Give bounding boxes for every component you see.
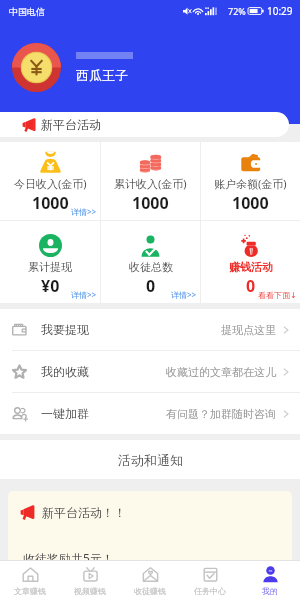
button[interactable]: 任务中心	[180, 561, 240, 600]
staticText: 累计提现	[28, 260, 72, 274]
button[interactable]: 文章赚钱	[0, 561, 60, 600]
staticText: 收藏过的文章都在这儿	[166, 365, 276, 379]
staticText: 中国电信	[9, 6, 45, 17]
staticText: 西瓜王子	[76, 67, 128, 83]
button[interactable]: 收徒赚钱	[120, 561, 180, 600]
button[interactable]: 累计提现	[0, 221, 100, 303]
button[interactable]: 我的	[240, 561, 300, 600]
staticText: 今日收入(金币)	[14, 176, 87, 191]
button[interactable]: 今日收入(金币)	[0, 142, 100, 220]
staticText: 0	[146, 275, 156, 297]
staticText: 新平台活动	[41, 117, 101, 132]
staticText: 赚钱活动	[229, 260, 273, 274]
staticText: 文章赚钱	[14, 586, 46, 596]
button[interactable]: 我的收藏	[0, 351, 300, 392]
button[interactable]: 新平台活动！！	[8, 491, 292, 586]
button[interactable]: 视频赚钱	[60, 561, 120, 600]
button[interactable]: 累计收入(金币)	[101, 142, 200, 220]
button[interactable]: 赚钱活动	[201, 221, 300, 303]
staticText: 详情>>	[71, 206, 97, 217]
staticText: 我的	[262, 586, 278, 596]
staticText: 账户余额(金币)	[214, 176, 287, 191]
staticText: 任务中心	[194, 586, 226, 596]
staticText: 详情>>	[71, 289, 97, 300]
button[interactable]: 我要提现	[0, 309, 300, 350]
button[interactable]: 账户余额(金币)	[201, 142, 300, 220]
staticText: 10:29	[267, 4, 293, 18]
staticText: ¥0	[41, 275, 60, 297]
staticText: 收徒总数	[129, 260, 173, 274]
staticText: 0	[246, 275, 256, 297]
staticText: 累计收入(金币)	[114, 176, 187, 191]
staticText: 提现点这里	[221, 323, 276, 337]
button[interactable]: 新平台活动	[0, 112, 289, 137]
staticText: 视频赚钱	[74, 586, 106, 596]
staticText: 详情>>	[171, 289, 197, 300]
button[interactable]: 一键加群	[0, 393, 300, 434]
staticText: 活动和通知	[118, 452, 183, 468]
staticText: 我要提现	[41, 322, 89, 337]
staticText: 新平台活动！！	[42, 505, 126, 520]
staticText: 1000	[132, 192, 169, 214]
staticText: 我的收藏	[41, 364, 89, 379]
staticText: 收徒奖励共5元！	[23, 550, 114, 566]
staticText: 1000	[232, 192, 269, 214]
staticText: 一键加群	[41, 406, 89, 421]
staticText: 1000	[32, 192, 69, 214]
staticText: 有问题？加群随时咨询	[166, 407, 276, 421]
staticText: 72%	[228, 5, 246, 17]
staticText: 收徒赚钱	[134, 586, 166, 596]
button[interactable]: 收徒总数	[101, 221, 200, 303]
staticText: 看看下面↓	[258, 290, 297, 300]
